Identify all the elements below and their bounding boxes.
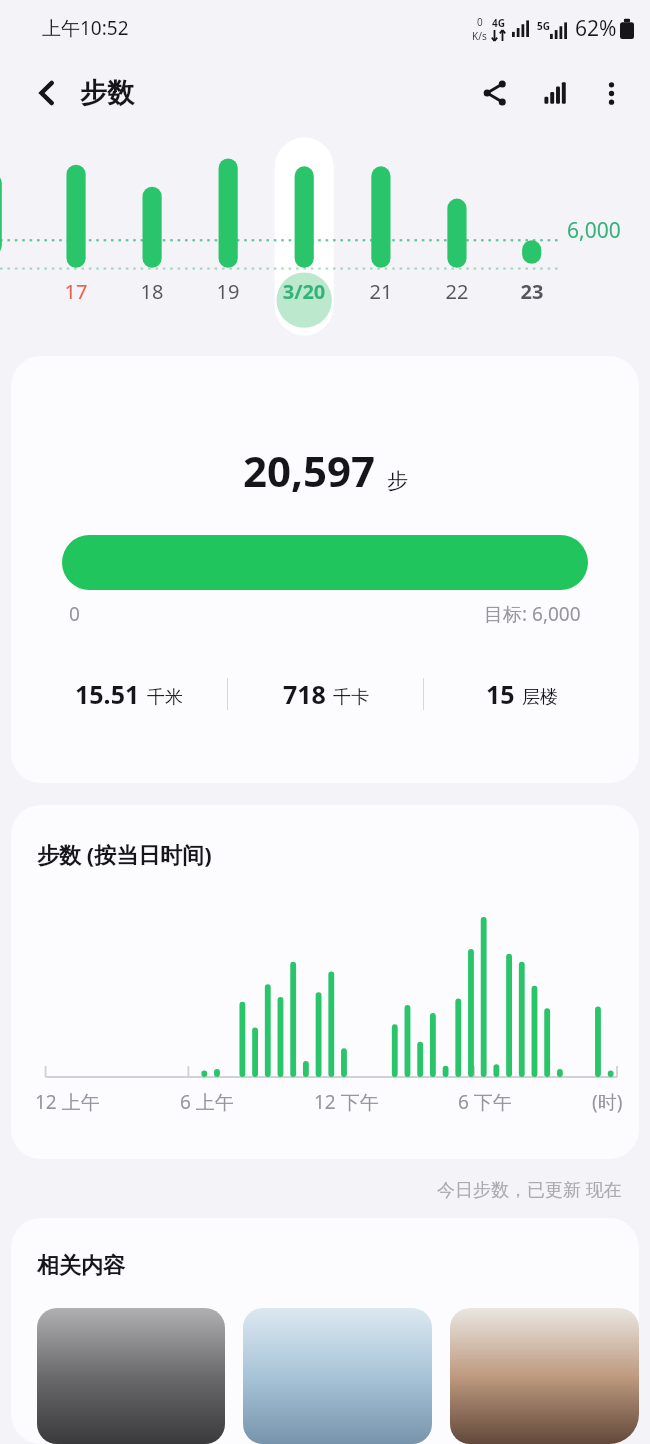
button[interactable] (450, 1308, 639, 1444)
staticText: 步数 (按当日时间) (37, 839, 212, 869)
staticText: 22 (430, 278, 484, 305)
button[interactable]: 20,597 (11, 356, 639, 783)
staticText: 层楼 (522, 686, 558, 709)
staticText: 步数 (80, 76, 134, 110)
button[interactable] (243, 1308, 432, 1444)
staticText: 上午10:52 (42, 15, 129, 41)
button[interactable]: 718 (228, 677, 423, 711)
staticText: 19 (201, 278, 255, 305)
staticText: 3/20 (277, 278, 331, 305)
staticText: 6 下午 (458, 1089, 512, 1115)
staticText: 6,000 (567, 216, 621, 245)
staticText: 4G (492, 16, 505, 30)
button[interactable]: Share (468, 66, 522, 120)
staticText: K/s (472, 29, 487, 43)
staticText: 12 上午 (35, 1089, 100, 1115)
staticText: 20,597 (243, 442, 376, 499)
staticText: 718 (283, 677, 326, 711)
button[interactable]: More options (584, 66, 638, 120)
button[interactable] (37, 1308, 225, 1444)
staticText: 0 (69, 601, 80, 627)
staticText: 15.51 (75, 677, 140, 711)
staticText: 18 (125, 278, 179, 305)
staticText: 5G (537, 19, 550, 33)
staticText: 15 (486, 677, 515, 711)
staticText: 12 下午 (314, 1089, 379, 1115)
staticText: 6 上午 (180, 1089, 234, 1115)
button[interactable]: 步数 (按当日时间) (11, 805, 639, 1159)
staticText: 23 (505, 278, 559, 305)
staticText: 相关内容 (37, 1252, 125, 1280)
staticText: 步 (387, 468, 408, 494)
button[interactable]: 15.51 (31, 677, 227, 711)
staticText: 目标: 6,000 (484, 601, 581, 627)
staticText: 17 (49, 278, 103, 305)
button[interactable]: Chart view (528, 66, 582, 120)
staticText: 0 (477, 15, 483, 29)
button[interactable]: 15 (424, 677, 619, 711)
staticText: 今日步数，已更新 现在 (437, 1177, 622, 1202)
button[interactable]: Back (20, 66, 74, 120)
staticText: 千米 (147, 686, 183, 709)
staticText: 62% (575, 14, 617, 43)
staticText: (时) (592, 1089, 623, 1115)
staticText: 21 (354, 278, 408, 305)
staticText: 千卡 (333, 686, 369, 709)
